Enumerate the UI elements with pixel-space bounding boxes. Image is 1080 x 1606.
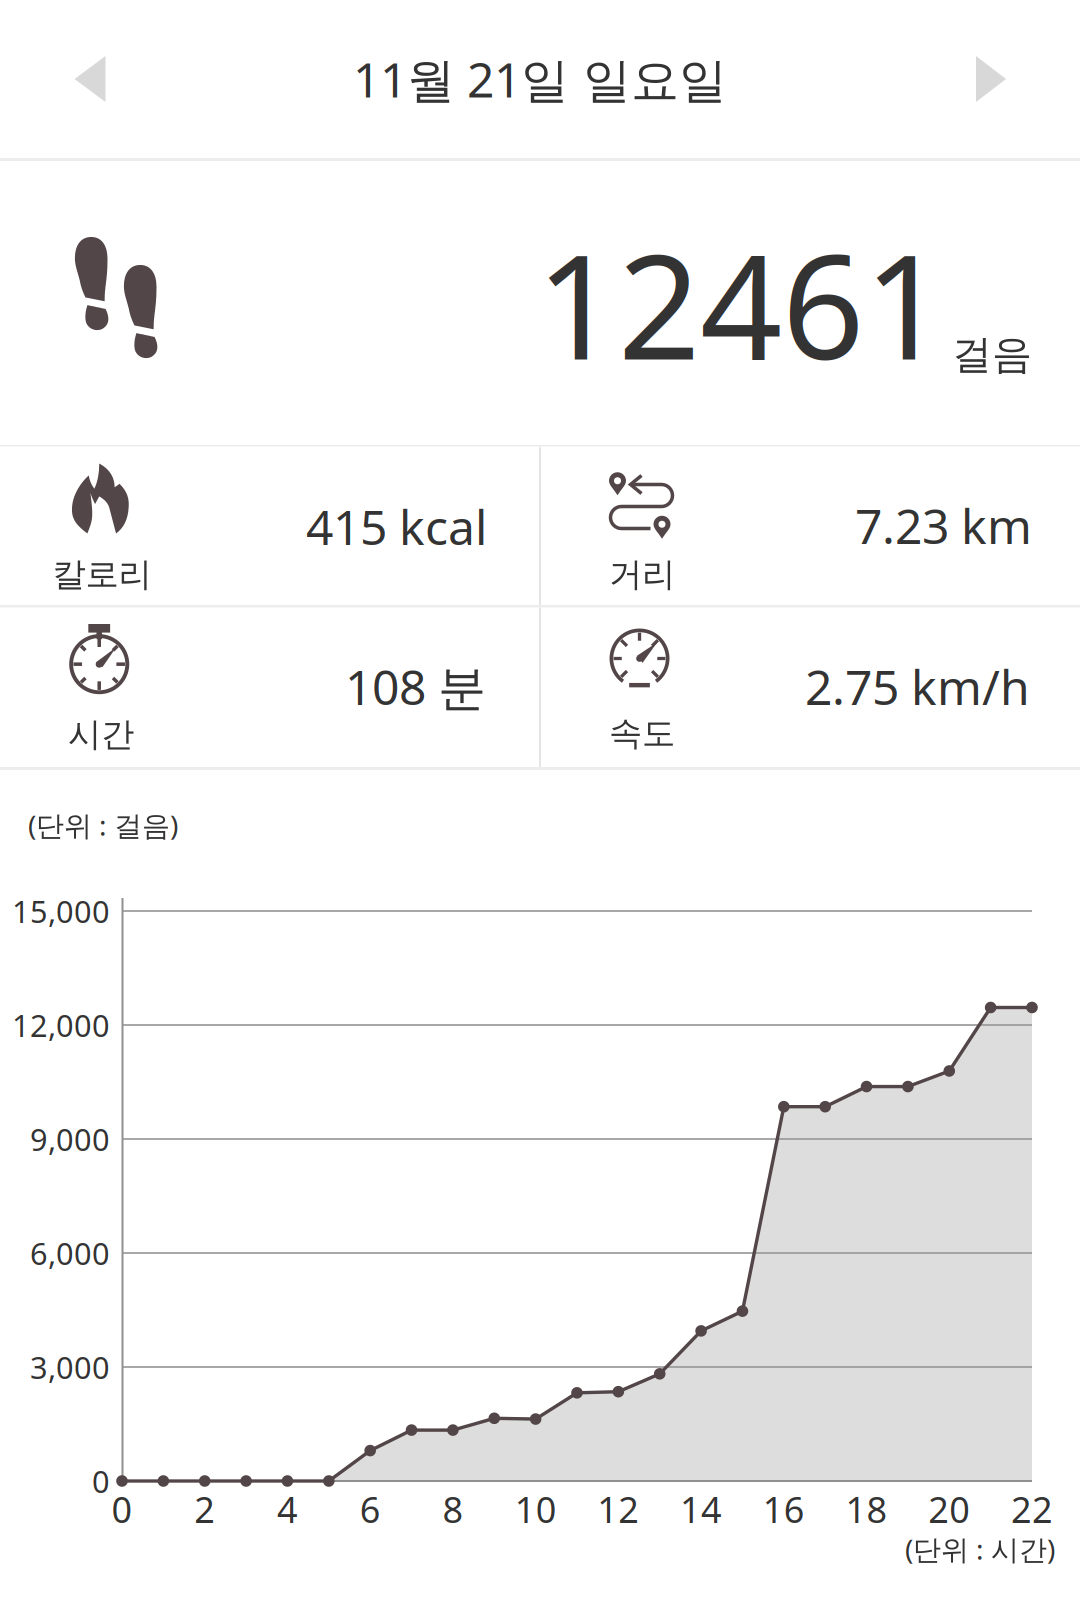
staticText: 20: [928, 1485, 970, 1533]
staticText: 2: [194, 1485, 215, 1533]
staticText: 18: [845, 1485, 887, 1533]
staticText: 12: [597, 1485, 639, 1533]
staticText: 9,000: [30, 1119, 110, 1159]
staticText: (단위 : 시간): [905, 1530, 1055, 1568]
staticText: 6,000: [30, 1233, 110, 1273]
staticText: 11월 21일 일요일: [353, 47, 727, 111]
staticText: 0: [111, 1485, 132, 1533]
button[interactable]: 거리: [541, 446, 1080, 606]
staticText: 14: [680, 1485, 722, 1533]
staticText: 8: [442, 1485, 463, 1533]
staticText: 2.75 km/h: [805, 655, 1030, 718]
button[interactable]: Previous day: [10, 0, 170, 158]
staticText: 12,000: [12, 1005, 110, 1045]
staticText: 시간: [68, 714, 134, 755]
staticText: 16: [763, 1485, 805, 1533]
staticText: 415 kcal: [306, 495, 487, 558]
staticText: 속도: [609, 713, 675, 754]
button[interactable]: 시간: [0, 607, 539, 767]
staticText: 10: [515, 1485, 557, 1533]
staticText: 칼로리: [52, 554, 151, 595]
staticText: 0: [92, 1461, 110, 1501]
button[interactable]: Next day: [911, 0, 1071, 158]
staticText: (단위 : 걸음): [28, 806, 178, 844]
button[interactable]: 속도: [541, 607, 1080, 767]
staticText: 22: [1011, 1485, 1053, 1533]
staticText: 걸음: [952, 330, 1032, 379]
staticText: 4: [277, 1485, 298, 1533]
staticText: 거리: [609, 554, 675, 595]
button[interactable]: 칼로리: [0, 446, 539, 606]
staticText: 3,000: [30, 1347, 110, 1387]
staticText: 15,000: [12, 891, 110, 931]
staticText: 12461: [536, 208, 946, 399]
staticText: 7.23 km: [855, 494, 1032, 557]
staticText: 108 분: [345, 655, 486, 718]
staticText: 6: [360, 1485, 381, 1533]
